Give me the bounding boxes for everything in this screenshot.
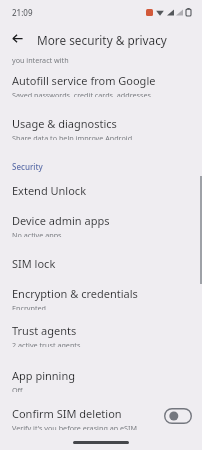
staticText: No active apps xyxy=(12,230,62,237)
staticText: App pinning xyxy=(12,368,76,383)
staticText: Extend Unlock xyxy=(12,183,87,198)
button[interactable]: Usage & diagnostics xyxy=(0,116,202,140)
staticText: 2 active trust agents xyxy=(12,340,81,347)
button[interactable]: Confirm SIM deletion xyxy=(0,406,202,430)
staticText: Saved passwords, credit cards, addresses xyxy=(12,90,151,97)
staticText: Confirm SIM deletion xyxy=(12,406,122,421)
staticText: Trust agents xyxy=(12,323,77,338)
staticText: Share data to help improve Android xyxy=(12,133,133,140)
staticText: 21:09 xyxy=(12,7,33,18)
staticText: you interact with xyxy=(12,55,69,65)
staticText: Security xyxy=(12,161,43,172)
staticText: SIM lock xyxy=(12,256,56,271)
button[interactable]: Back xyxy=(6,27,28,49)
staticText: Verify it's you before erasing an eSIM xyxy=(12,423,137,430)
button[interactable]: Device admin apps xyxy=(0,213,202,237)
staticText: More security & privacy xyxy=(37,32,167,48)
staticText: Off xyxy=(12,385,23,392)
button[interactable]: SIM lock xyxy=(0,256,202,271)
button[interactable]: Extend Unlock xyxy=(0,183,202,198)
button[interactable]: Autofill service from Google xyxy=(0,73,202,97)
button[interactable]: App pinning xyxy=(0,368,202,392)
staticText: Autofill service from Google xyxy=(12,73,156,88)
button[interactable]: Trust agents xyxy=(0,323,202,347)
staticText: Encrypted xyxy=(12,303,47,310)
staticText: Device admin apps xyxy=(12,213,110,228)
staticText: Usage & diagnostics xyxy=(12,116,117,131)
button[interactable]: Encryption & credentials xyxy=(0,286,202,310)
staticText: Encryption & credentials xyxy=(12,286,138,301)
button[interactable]: Confirm SIM deletion xyxy=(164,408,192,424)
